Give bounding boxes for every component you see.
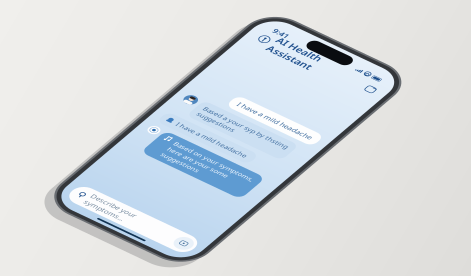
staticText: AI Health Assistant [69, 43, 195, 117]
button[interactable]: New chat [337, 66, 367, 94]
